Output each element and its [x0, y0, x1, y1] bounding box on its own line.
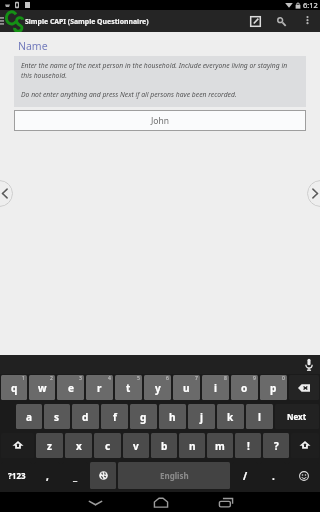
staticText: n [189, 439, 196, 453]
staticText: s [54, 410, 60, 424]
staticText: 1 [22, 375, 25, 382]
staticText: l [258, 410, 261, 424]
button[interactable]: b [151, 433, 177, 458]
staticText: k [227, 410, 234, 424]
button[interactable]: Navigation drawer [0, 10, 5, 32]
staticText: z [47, 439, 52, 453]
button[interactable]: Shift [291, 433, 319, 458]
staticText: d [82, 410, 89, 424]
button[interactable]: l [246, 404, 273, 429]
button[interactable]: o [231, 375, 258, 400]
staticText: 6:12 [303, 0, 318, 10]
button[interactable]: r [86, 375, 113, 400]
staticText: x [76, 439, 82, 453]
staticText: r [97, 381, 102, 395]
staticText: ?123 [8, 470, 26, 481]
button[interactable]: a [16, 404, 42, 429]
button[interactable]: f [101, 404, 128, 429]
button[interactable]: t [115, 375, 142, 400]
staticText: ! [247, 439, 250, 453]
button[interactable]: / [232, 462, 258, 489]
staticText: g [140, 410, 147, 424]
staticText: 3 [79, 375, 82, 382]
button[interactable]: d [72, 404, 99, 429]
staticText: j [200, 410, 203, 424]
staticText: _ [73, 469, 78, 483]
staticText: Name [18, 39, 48, 53]
button[interactable]: Change language [90, 462, 116, 489]
staticText: 5 [137, 375, 140, 382]
staticText: Next [287, 411, 307, 422]
button[interactable]: i [202, 375, 229, 400]
button[interactable]: n [179, 433, 205, 458]
staticText: h [169, 410, 176, 424]
button[interactable]: . [260, 462, 286, 489]
button[interactable]: Emoji [288, 462, 319, 489]
staticText: John [151, 115, 169, 127]
button[interactable]: ? [263, 433, 289, 458]
button[interactable]: Search [268, 10, 294, 32]
staticText: 0 [282, 375, 285, 382]
button[interactable]: h [159, 404, 186, 429]
staticText: 8 [224, 375, 227, 382]
button[interactable]: z [36, 433, 63, 458]
button[interactable]: v [123, 433, 149, 458]
staticText: b [161, 439, 168, 453]
staticText: . [272, 469, 275, 483]
button[interactable]: y [144, 375, 171, 400]
staticText: w [38, 381, 47, 395]
button[interactable]: s [44, 404, 70, 429]
button[interactable]: u [173, 375, 200, 400]
button[interactable]: Recent apps [193, 492, 258, 512]
staticText: 9 [253, 375, 256, 382]
staticText: a [26, 410, 32, 424]
button[interactable]: g [130, 404, 157, 429]
button[interactable]: , [34, 462, 60, 489]
staticText: p [270, 381, 277, 395]
staticText: t [126, 381, 131, 395]
button[interactable]: m [207, 433, 233, 458]
button[interactable]: More options [294, 10, 320, 32]
button[interactable]: Voice input [303, 358, 315, 371]
button[interactable]: Delete [289, 375, 319, 400]
staticText: u [183, 381, 190, 395]
button[interactable]: k [217, 404, 244, 429]
button[interactable]: Hide keyboard [63, 492, 128, 512]
button[interactable]: English [118, 462, 230, 489]
button[interactable]: Next question [307, 180, 320, 207]
staticText: 7 [195, 375, 198, 382]
staticText: 2 [50, 375, 53, 382]
button[interactable]: _ [62, 462, 88, 489]
staticText: o [241, 381, 248, 395]
staticText: Enter the name of the next person in the… [21, 61, 299, 80]
staticText: , [46, 469, 49, 483]
staticText: f [113, 410, 117, 424]
staticText: i [214, 381, 217, 395]
button[interactable]: Previous question [0, 180, 13, 207]
button[interactable]: ?123 [1, 462, 32, 489]
staticText: Simple CAPI (Sample Questionnaire) [25, 17, 149, 26]
staticText: m [215, 439, 225, 453]
button[interactable]: j [188, 404, 215, 429]
button[interactable]: x [65, 433, 92, 458]
button[interactable]: Home [128, 492, 193, 512]
button[interactable]: e [57, 375, 84, 400]
staticText: English [160, 470, 189, 481]
button[interactable]: q [1, 375, 27, 400]
staticText: Do not enter anything and press Next if … [21, 90, 237, 99]
button[interactable]: Edit [242, 10, 268, 32]
staticText: y [155, 381, 161, 395]
button[interactable]: ! [235, 433, 261, 458]
button[interactable]: Shift [1, 433, 34, 458]
button[interactable]: Next [275, 404, 319, 429]
staticText: c [105, 439, 111, 453]
staticText: ? [274, 439, 279, 453]
button[interactable]: w [29, 375, 55, 400]
button[interactable]: c [94, 433, 121, 458]
button[interactable]: p [260, 375, 287, 400]
staticText: q [11, 381, 18, 395]
staticText: 6 [166, 375, 169, 382]
staticText: 4 [108, 375, 111, 382]
staticText: e [68, 381, 74, 395]
button[interactable]: John [14, 110, 306, 131]
